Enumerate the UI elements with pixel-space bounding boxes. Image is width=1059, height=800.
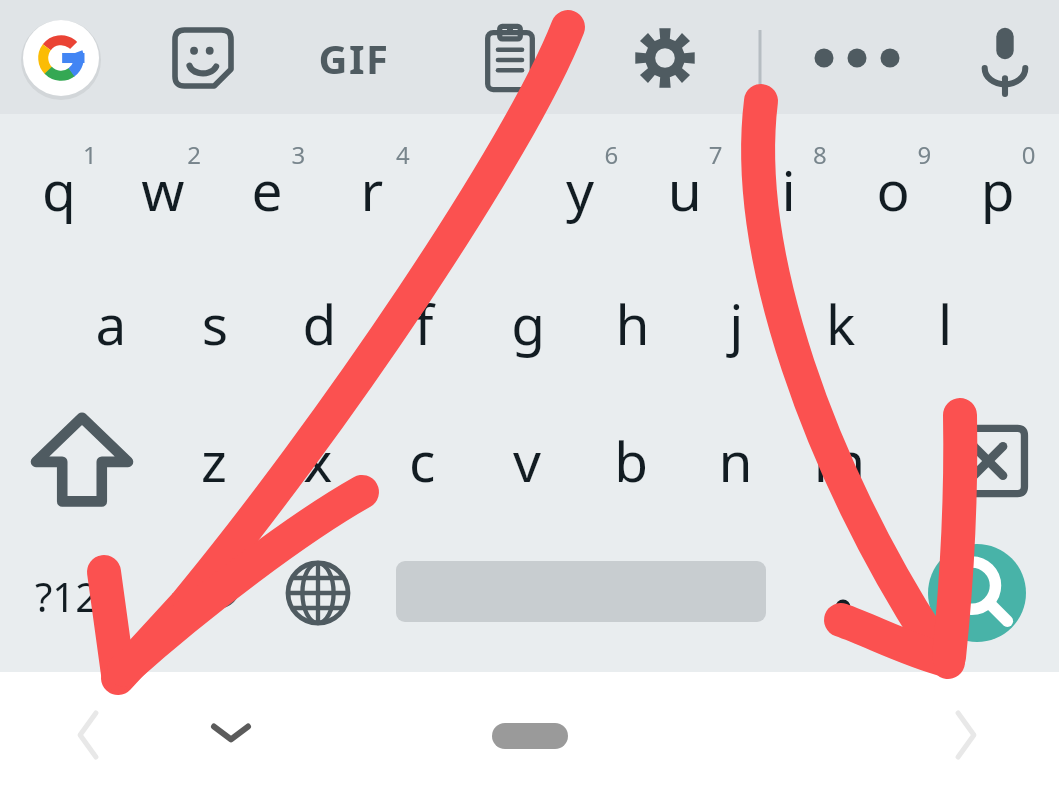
button[interactable]: Settings: [617, 9, 713, 107]
button[interactable]: p: [953, 122, 1059, 236]
button[interactable]: y: [530, 122, 636, 236]
button[interactable]: u: [635, 122, 741, 236]
button[interactable]: Emoji: [170, 532, 266, 656]
button[interactable]: n: [690, 394, 796, 508]
button[interactable]: h: [583, 258, 689, 372]
button[interactable]: a: [53, 258, 159, 372]
button[interactable]: Voice input: [957, 9, 1053, 107]
button[interactable]: e: [212, 122, 318, 236]
button[interactable]: q: [0, 122, 106, 236]
button[interactable]: More options: [809, 9, 905, 107]
button[interactable]: t: [424, 122, 530, 236]
button[interactable]: GIF: [306, 9, 402, 107]
button[interactable]: o: [847, 122, 953, 236]
button[interactable]: l: [900, 258, 1006, 372]
button[interactable]: i: [741, 122, 847, 236]
button[interactable]: Change language: [270, 532, 366, 656]
button[interactable]: Space: [390, 532, 770, 656]
button[interactable]: z: [160, 394, 266, 508]
button[interactable]: c: [372, 394, 478, 508]
button[interactable]: Back: [40, 690, 140, 785]
button[interactable]: j: [688, 258, 794, 372]
button[interactable]: Stickers: [155, 9, 251, 107]
button[interactable]: Symbols: [0, 532, 160, 656]
button[interactable]: Hide keyboard: [180, 690, 280, 785]
button[interactable]: Forward: [915, 690, 1015, 785]
button[interactable]: Backspace: [901, 394, 1059, 508]
button[interactable]: f: [371, 258, 477, 372]
button[interactable]: m: [795, 394, 901, 508]
button[interactable]: Shift: [0, 394, 160, 508]
button[interactable]: w: [106, 122, 212, 236]
button[interactable]: Google search: [12, 9, 110, 107]
button[interactable]: g: [477, 258, 583, 372]
button[interactable]: b: [584, 394, 690, 508]
button[interactable]: Clipboard: [462, 9, 558, 107]
button[interactable]: Period: [790, 532, 895, 656]
button[interactable]: d: [265, 258, 371, 372]
button[interactable]: Search: [928, 532, 1048, 656]
button[interactable]: Home: [460, 690, 600, 785]
button[interactable]: x: [266, 394, 372, 508]
button[interactable]: r: [318, 122, 424, 236]
button[interactable]: v: [478, 394, 584, 508]
button[interactable]: k: [794, 258, 900, 372]
button[interactable]: s: [159, 258, 265, 372]
